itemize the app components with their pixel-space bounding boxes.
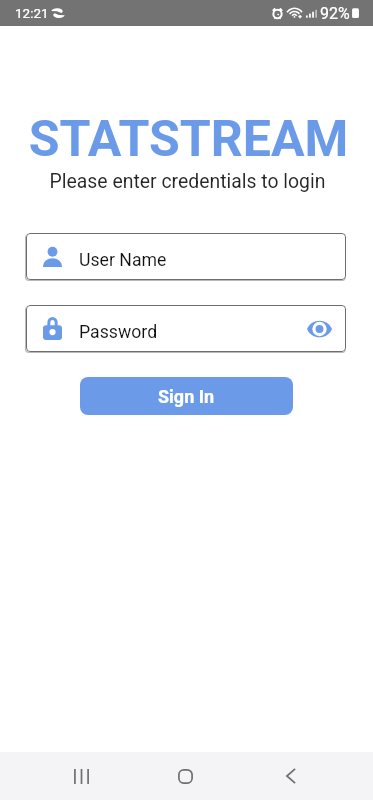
staticText: STATSTREAM (2, 110, 373, 169)
button[interactable]: Home (153, 752, 218, 800)
staticText: 92% (320, 4, 350, 23)
button[interactable]: Show password (293, 305, 346, 352)
button[interactable]: Recent apps (49, 752, 114, 800)
button[interactable]: User Name (26, 233, 346, 280)
button[interactable]: Sign In (80, 377, 293, 415)
staticText: User Name (79, 250, 167, 271)
staticText: Please enter credentials to login (1, 170, 373, 193)
staticText: Password (79, 322, 158, 343)
button[interactable]: Password (26, 305, 346, 352)
button[interactable]: Back (258, 752, 323, 800)
staticText: Sign In (158, 386, 215, 407)
staticText: 12:21 (15, 5, 49, 21)
